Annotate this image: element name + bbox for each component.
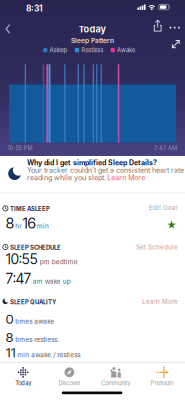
staticText: Your tracker couldn't get a consistent h… xyxy=(27,166,184,174)
staticText: 11 xyxy=(6,344,16,360)
button[interactable]: Set Schedule xyxy=(136,243,178,251)
button[interactable]: Edit Goal xyxy=(149,204,178,211)
button[interactable]: Share xyxy=(153,20,162,32)
staticText: SLEEP SCHEDULE xyxy=(10,244,61,251)
staticText: 8 xyxy=(6,329,14,345)
staticText: 7:47 xyxy=(6,270,31,287)
button[interactable]: Learn More xyxy=(142,298,178,305)
staticText: hr xyxy=(15,222,21,230)
staticText: SLEEP QUALITY xyxy=(10,298,56,306)
button[interactable]: Expand chart xyxy=(172,40,181,49)
staticText: 8 xyxy=(6,214,14,232)
staticText: Community xyxy=(101,380,130,387)
staticText: Why did I get simplified Sleep Details? xyxy=(27,158,157,167)
staticText: times restless xyxy=(15,336,57,343)
staticText: Asleep xyxy=(49,47,67,54)
button[interactable]: Discover xyxy=(46,364,92,388)
staticText: Restless xyxy=(81,47,103,54)
staticText: Sleep Pattern xyxy=(71,37,114,45)
staticText: 7:47 AM xyxy=(154,145,177,152)
staticText: 10:55 xyxy=(6,251,38,268)
button[interactable]: Premium xyxy=(139,364,185,388)
staticText: times awake xyxy=(15,317,54,325)
staticText: 8:31 xyxy=(26,3,43,14)
staticText: TIME ASLEEP xyxy=(10,205,50,213)
staticText: Discover xyxy=(58,380,80,387)
staticText: 10:55 PM xyxy=(7,145,32,152)
button[interactable]: Learn More xyxy=(107,173,145,182)
staticText: min awake / restless xyxy=(17,351,80,359)
button[interactable]: Back xyxy=(0,23,16,37)
button[interactable]: Today xyxy=(0,364,46,388)
staticText: Learn More xyxy=(142,298,178,305)
staticText: 16 xyxy=(23,214,36,232)
staticText: Learn More xyxy=(107,173,145,182)
staticText: min xyxy=(37,222,49,230)
staticText: reading while you slept. xyxy=(27,173,106,182)
staticText: pm bedtime xyxy=(40,258,78,266)
staticText: Awake xyxy=(117,47,135,54)
button[interactable]: Community xyxy=(92,364,139,388)
staticText: Set Schedule xyxy=(136,243,178,251)
button[interactable]: More options xyxy=(169,26,180,29)
staticText: Today xyxy=(78,24,106,35)
staticText: Today xyxy=(15,380,31,387)
staticText: Edit Goal xyxy=(149,204,178,211)
staticText: am wake up xyxy=(33,277,71,285)
staticText: Premium xyxy=(150,380,173,387)
staticText: 0 xyxy=(6,311,14,327)
